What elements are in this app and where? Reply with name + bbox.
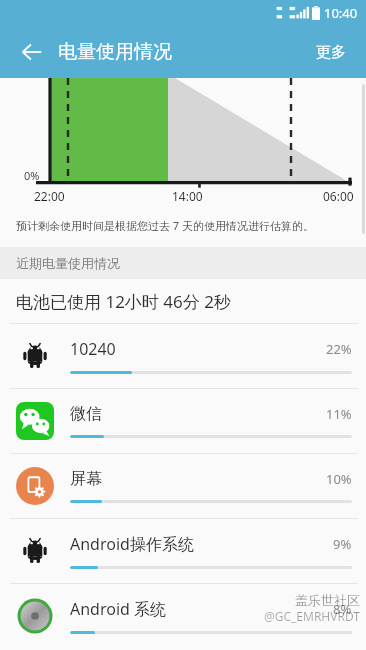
staticText: 盖乐世社区	[295, 592, 360, 608]
button[interactable]: 10240	[0, 324, 366, 388]
staticText: 10:40	[324, 4, 358, 22]
staticText: 更多	[316, 43, 346, 62]
staticText: 06:00	[323, 188, 354, 204]
button[interactable]: Back	[12, 32, 52, 72]
staticText: 9%	[333, 535, 352, 553]
staticText: 电池已使用 12小时 46分 2秒	[16, 290, 231, 313]
staticText: 8%	[333, 600, 352, 618]
staticText: 屏幕	[70, 469, 102, 489]
staticText: 22%	[326, 340, 352, 358]
staticText: Android 系统	[70, 598, 167, 620]
staticText: 22:00	[34, 188, 65, 204]
staticText: Android操作系统	[70, 533, 194, 555]
staticText: 微信	[70, 404, 102, 424]
staticText: 0%	[24, 168, 40, 183]
staticText: 10%	[326, 470, 352, 488]
staticText: 11%	[326, 405, 352, 423]
staticText: 预计剩余使用时间是根据您过去 7 天的使用情况进行估算的。	[16, 218, 315, 233]
staticText: 近期电量使用情况	[16, 255, 120, 271]
staticText: @GC_EMRHVRDT	[263, 608, 360, 624]
button[interactable]: 更多	[310, 35, 352, 70]
button[interactable]: Android操作系统	[0, 519, 366, 583]
button[interactable]: 微信	[0, 389, 366, 453]
staticText: 14:00	[172, 188, 203, 204]
button[interactable]: Android 系统	[0, 584, 366, 648]
staticText: 10240	[70, 338, 116, 360]
staticText: 电量使用情况	[58, 40, 172, 64]
button[interactable]: 屏幕	[0, 454, 366, 518]
